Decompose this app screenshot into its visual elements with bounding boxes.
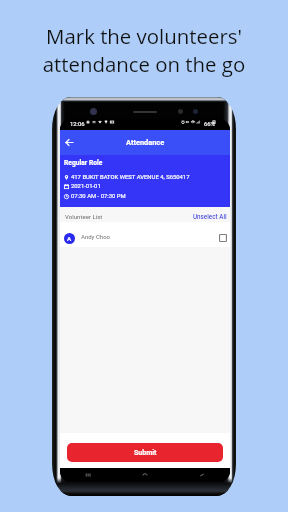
staticText: A — [67, 235, 72, 242]
staticText: Andy Choo — [81, 233, 110, 240]
button[interactable]: Back — [196, 469, 208, 481]
staticText: Unselect All — [193, 213, 227, 220]
button[interactable]: Recent apps — [82, 469, 94, 481]
button[interactable]: A — [60, 222, 230, 247]
button[interactable]: Home — [139, 469, 151, 481]
staticText: 12:06 — [70, 121, 85, 128]
button[interactable]: Submit — [67, 443, 223, 462]
button[interactable]: Unselect All — [192, 210, 228, 223]
staticText: 07:30 AM - 07:30 PM — [71, 193, 126, 200]
staticText: Submit — [134, 449, 157, 457]
staticText: Mark the volunteers' attendance on the g… — [0, 22, 288, 78]
button[interactable]: Back — [62, 135, 76, 149]
staticText: 417 BUKIT BATOK WEST AVENUE 4, S650417 — [71, 174, 190, 181]
staticText: 2021-01-01 — [71, 183, 101, 190]
staticText: Attendance — [126, 138, 165, 147]
staticText: 66% — [204, 121, 215, 128]
staticText: Regular Role — [64, 159, 103, 167]
staticText: Volunteer List — [65, 213, 103, 220]
